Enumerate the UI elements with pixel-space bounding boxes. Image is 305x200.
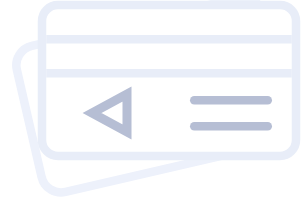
button[interactable]: Credit cards illustration [0,0,305,200]
